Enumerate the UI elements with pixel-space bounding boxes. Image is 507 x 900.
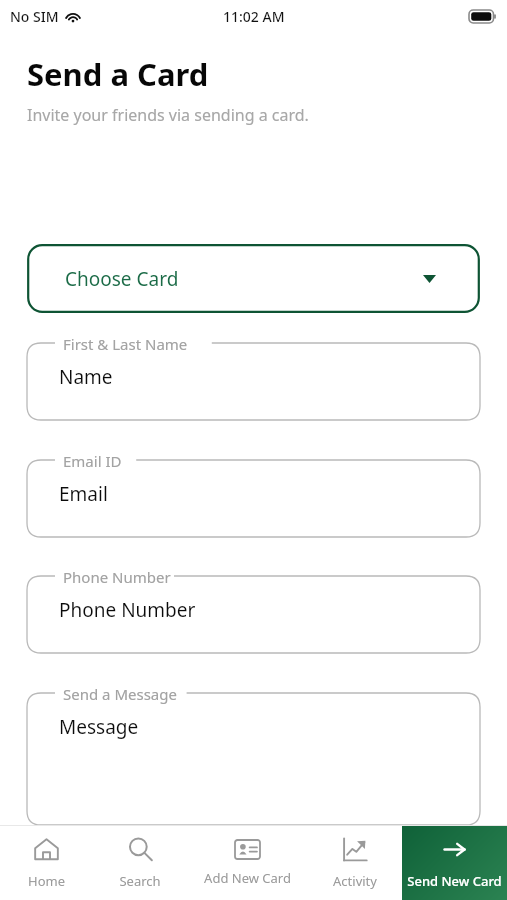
- button[interactable]: Activity: [308, 826, 402, 900]
- staticText: Home: [28, 872, 65, 890]
- staticText: Email ID: [63, 451, 122, 471]
- other: Send New Card: [441, 836, 468, 863]
- button[interactable]: Send New Card: [402, 826, 507, 900]
- button[interactable]: Send a Message: [27, 684, 480, 825]
- staticText: First & Last Name: [63, 334, 188, 354]
- staticText: Add New Card: [204, 869, 291, 887]
- staticText: Send a Message: [63, 684, 177, 704]
- button[interactable]: Choose Card: [27, 244, 480, 313]
- staticText: Email: [59, 481, 108, 507]
- staticText: Send a Card: [27, 53, 209, 95]
- staticText: Invite your friends via sending a card.: [27, 104, 309, 126]
- staticText: Message: [59, 714, 139, 740]
- staticText: Name: [59, 364, 113, 390]
- button[interactable]: Email ID: [27, 451, 480, 537]
- staticText: Search: [119, 872, 161, 890]
- staticText: Choose Card: [65, 266, 179, 292]
- staticText: No SIM: [10, 7, 59, 26]
- staticText: Phone Number: [59, 597, 196, 623]
- staticText: 11:02 AM: [223, 7, 285, 26]
- button[interactable]: First & Last Name: [27, 334, 480, 420]
- button[interactable]: Phone Number: [27, 567, 480, 653]
- staticText: Activity: [333, 872, 377, 890]
- button[interactable]: Search: [93, 826, 186, 900]
- staticText: Phone Number: [63, 567, 171, 587]
- button[interactable]: Add New Card: [186, 826, 308, 900]
- staticText: Send New Card: [407, 872, 502, 890]
- button[interactable]: Home: [0, 826, 93, 900]
